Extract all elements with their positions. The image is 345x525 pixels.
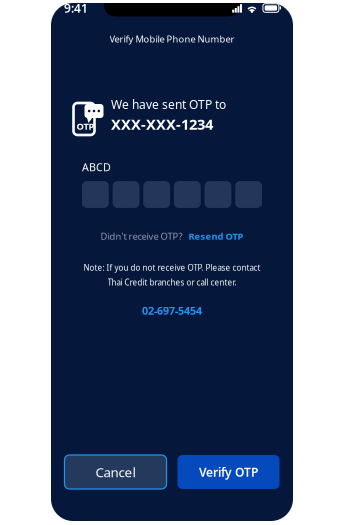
staticText: 02-697-5454 <box>142 304 202 318</box>
staticText: Note: If you do not receive OTP. Please … <box>83 262 260 273</box>
staticText: Verify OTP <box>199 464 258 480</box>
staticText: Thai Credit branches or call center. <box>107 277 236 288</box>
button[interactable]: Verify OTP <box>177 455 279 489</box>
staticText: Cancel <box>95 463 135 481</box>
button[interactable]: 02-697-5454 <box>142 304 202 318</box>
staticText: XXX-XXX-1234 <box>111 114 213 134</box>
staticText: ABCD <box>82 160 111 174</box>
staticText: Resend OTP <box>188 230 243 242</box>
staticText: Verify Mobile Phone Number <box>109 33 234 45</box>
staticText: 9:41 <box>64 0 88 16</box>
staticText: OTP <box>76 120 94 132</box>
button[interactable]: Resend OTP <box>188 230 243 242</box>
staticText: We have sent OTP to <box>111 96 226 112</box>
button[interactable]: Cancel <box>64 455 166 489</box>
staticText: Didn't receive OTP? <box>100 230 182 242</box>
